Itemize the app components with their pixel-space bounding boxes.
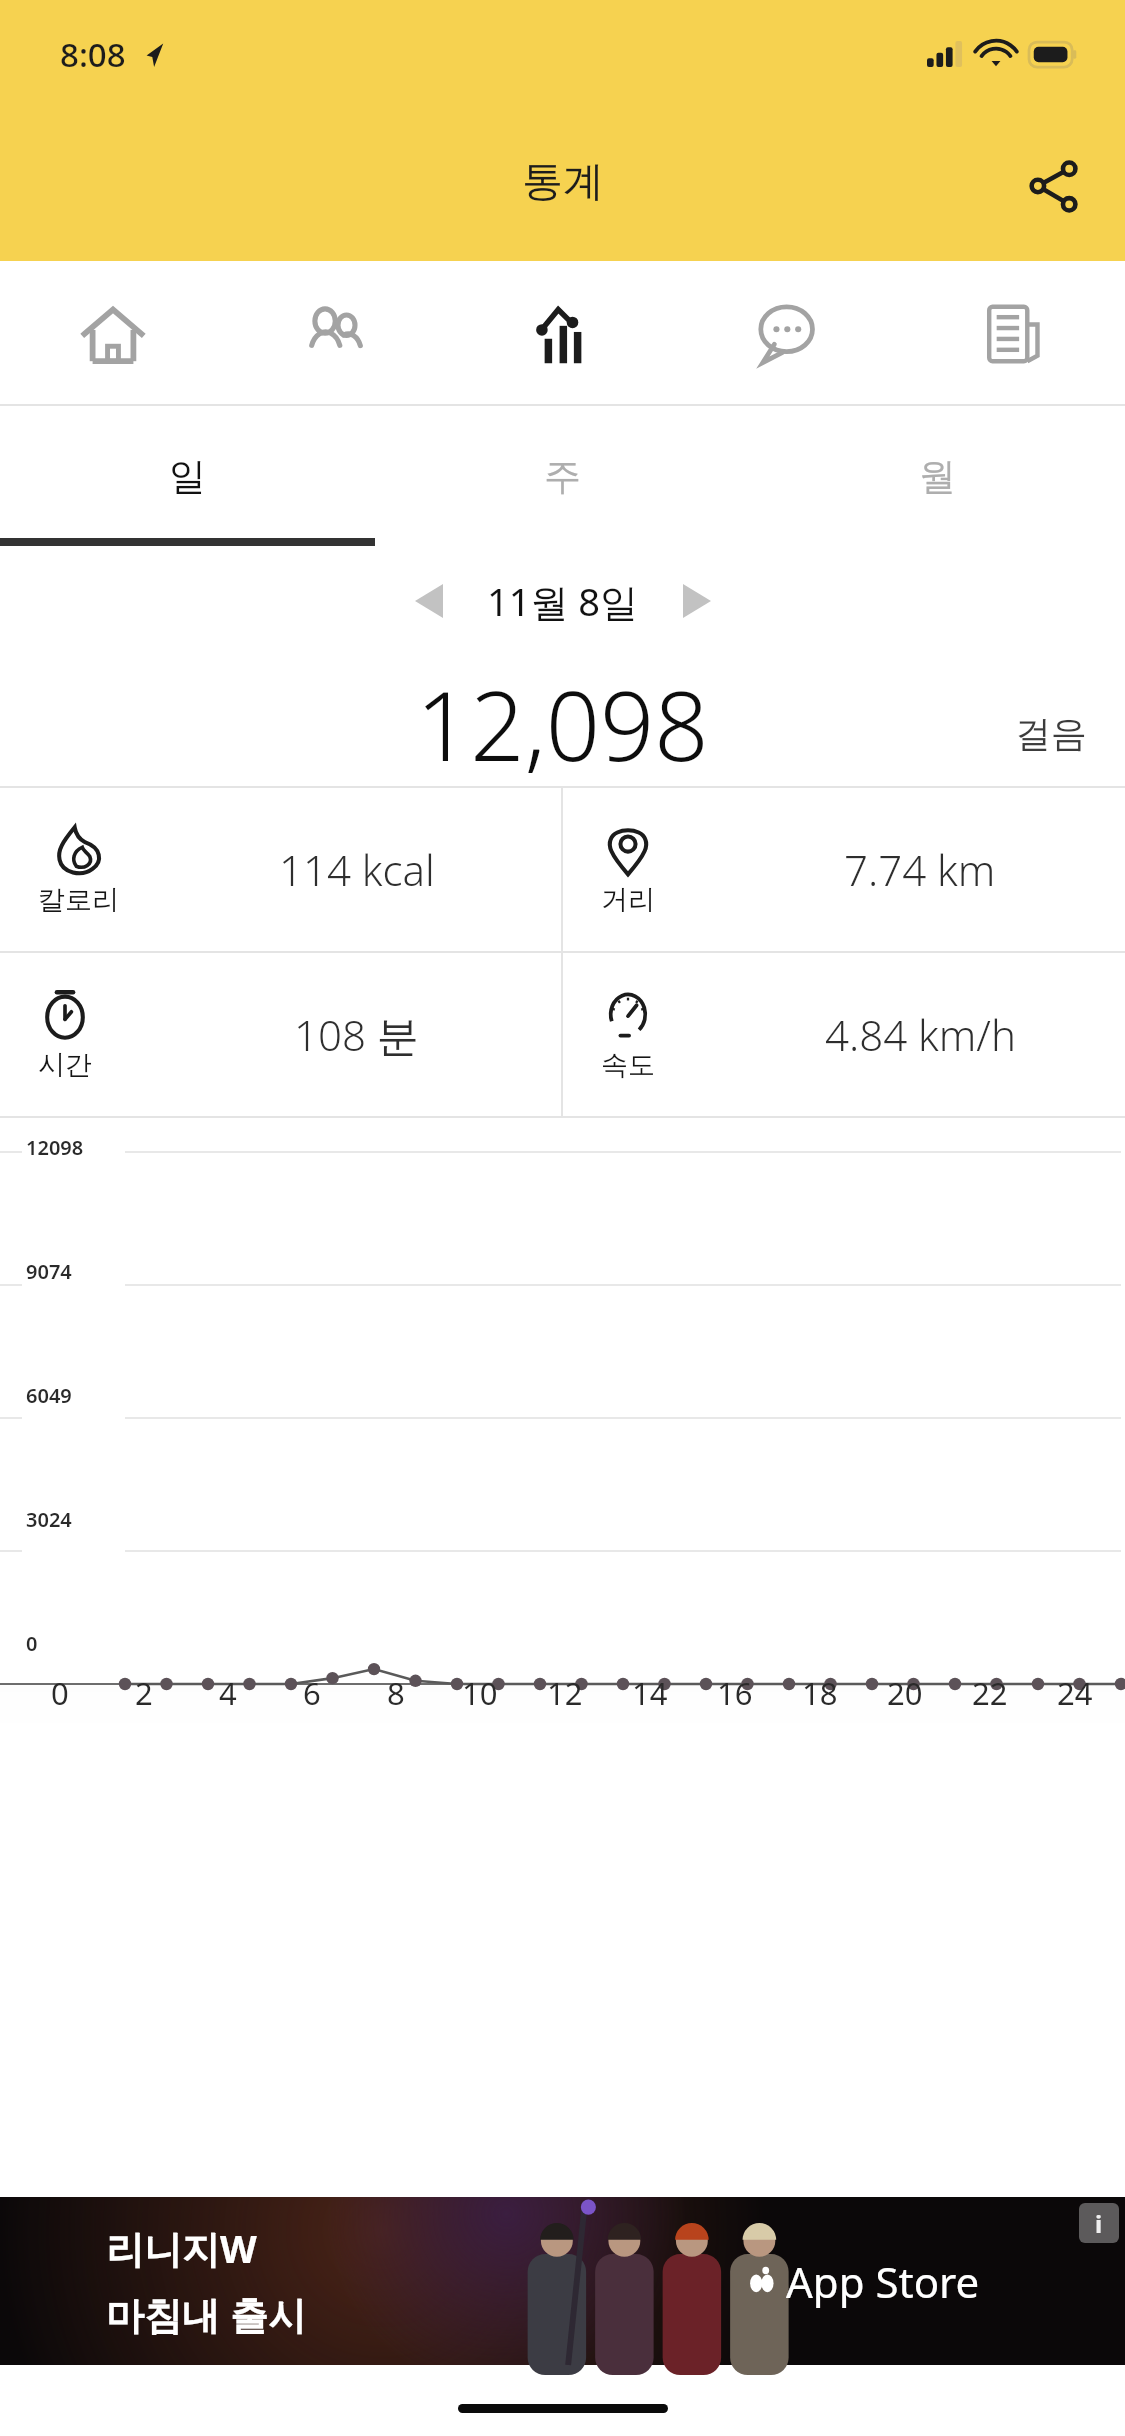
staticText: 6 [303,1672,321,1714]
button[interactable]: Friends [225,261,450,406]
staticText: 12098 [26,1134,84,1161]
staticText: 주 [544,453,581,500]
button[interactable]: Home [0,261,225,406]
button[interactable]: 시간 [0,953,561,1116]
button[interactable]: 월 [750,406,1125,546]
staticText: 12 [547,1672,583,1714]
button[interactable]: Share [1005,138,1101,234]
button[interactable]: 리니지W [0,2197,1125,2365]
staticText: 12,098 [416,659,709,788]
button[interactable]: Ad info [1079,2203,1119,2243]
button[interactable]: Next day [661,565,733,637]
staticText: 8:08 [60,32,126,77]
button[interactable]: 일 [0,406,375,546]
staticText: 0 [51,1672,69,1714]
staticText: 6049 [26,1382,72,1409]
staticText: 월 [919,453,956,500]
staticText: 20 [887,1672,923,1714]
staticText: 3024 [26,1506,72,1533]
staticText: 14 [632,1672,668,1714]
button[interactable]: 거리 [563,788,1125,951]
staticText: 8 [387,1672,405,1714]
staticText: 4.84 km/h [825,1006,1016,1063]
staticText: 0 [26,1630,38,1657]
button[interactable]: Statistics [450,261,675,406]
button[interactable]: News [900,261,1125,406]
staticText: 시간 [38,1048,92,1082]
button[interactable]: 주 [375,406,750,546]
staticText: i [1095,2207,1103,2240]
button[interactable]: 속도 [563,953,1125,1116]
staticText: 18 [802,1672,838,1714]
staticText: 22 [972,1672,1008,1714]
staticText: 4 [219,1672,237,1714]
button[interactable]: 칼로리 [0,788,561,951]
staticText: 2 [135,1672,153,1714]
staticText: 속도 [601,1048,655,1082]
button[interactable]: Previous day [393,565,465,637]
staticText: 칼로리 [38,883,119,917]
staticText: 일 [169,453,206,500]
staticText: 거리 [601,883,655,917]
staticText: 9074 [26,1258,72,1285]
button[interactable]: Chat [675,261,900,406]
staticText: 걸음 [1015,711,1087,756]
staticText: 16 [717,1672,753,1714]
staticText: App Store [786,2253,980,2310]
staticText: 마침내 출시 [106,2288,306,2340]
staticText: 7.74 km [844,841,996,898]
staticText: 리니지W [106,2222,257,2274]
staticText: 24 [1057,1672,1093,1714]
staticText: 114 kcal [279,841,435,898]
staticText: 10 [462,1672,498,1714]
staticText: 108 분 [294,1006,419,1063]
staticText: 11월 8일 [487,575,639,627]
staticText: 통계 [522,156,604,208]
